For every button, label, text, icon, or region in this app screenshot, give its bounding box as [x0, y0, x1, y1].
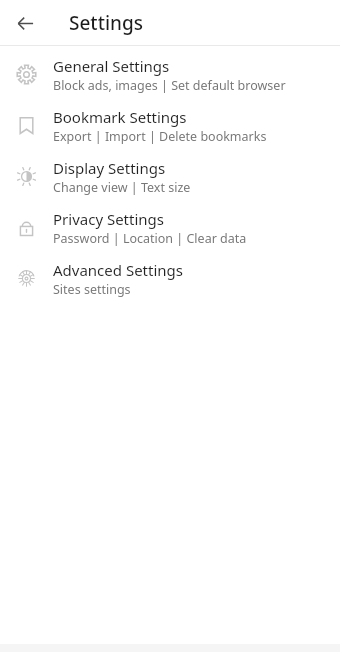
staticText: Change view | Text size: [53, 179, 191, 196]
staticText: Privacy Settings: [53, 209, 165, 229]
staticText: Advanced Settings: [53, 260, 183, 280]
staticText: Sites settings: [53, 281, 131, 298]
button[interactable]: Privacy Settings: [0, 202, 340, 253]
button[interactable]: Bookmark Settings: [0, 100, 340, 151]
staticText: Export | Import | Delete bookmarks: [53, 128, 267, 145]
staticText: Password | Location | Clear data: [53, 230, 247, 247]
staticText: Settings: [69, 10, 143, 36]
staticText: Display Settings: [53, 158, 166, 178]
button[interactable]: Display Settings: [0, 151, 340, 202]
staticText: Block ads, images | Set default browser: [53, 77, 286, 94]
button[interactable]: Back: [9, 7, 41, 39]
staticText: Bookmark Settings: [53, 107, 187, 127]
staticText: General Settings: [53, 56, 170, 76]
button[interactable]: General Settings: [0, 49, 340, 100]
button[interactable]: Advanced Settings: [0, 253, 340, 304]
